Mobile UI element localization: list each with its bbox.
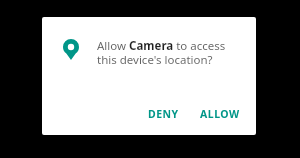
staticText: ALLOW: [200, 107, 240, 121]
other: Location: [63, 39, 79, 60]
staticText: DENY: [148, 107, 179, 121]
button[interactable]: DENY: [144, 103, 183, 125]
staticText: Allow Camera to access this device's loc…: [97, 38, 235, 68]
button[interactable]: ALLOW: [196, 103, 244, 125]
